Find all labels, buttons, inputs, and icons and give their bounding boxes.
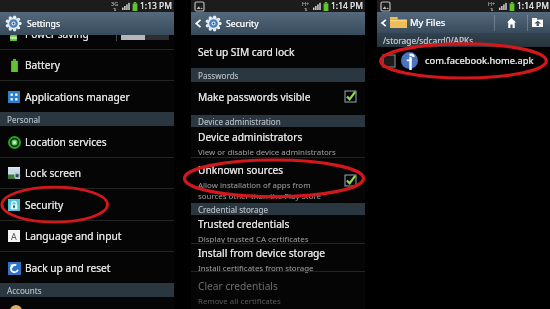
staticText: Battery bbox=[25, 58, 60, 72]
button[interactable]: Back up and reset bbox=[0, 252, 174, 283]
staticText: View or disable device administrators bbox=[198, 147, 336, 158]
staticText: Personal bbox=[7, 114, 41, 125]
staticText: Security bbox=[226, 18, 259, 30]
staticText: Install from device storage bbox=[198, 246, 326, 260]
staticText: Accounts bbox=[7, 285, 42, 296]
button[interactable]: A bbox=[0, 221, 174, 251]
staticText: Settings bbox=[27, 18, 61, 30]
staticText: 1:14 PM bbox=[517, 0, 549, 12]
staticText: Set up SIM card lock bbox=[198, 45, 295, 59]
button[interactable]: Device administrators bbox=[191, 127, 365, 157]
button[interactable]: Make passwords visible bbox=[191, 82, 365, 115]
staticText: Power saving bbox=[25, 27, 89, 41]
staticText: A bbox=[11, 230, 17, 242]
staticText: Credential storage bbox=[198, 204, 269, 215]
staticText: Allow installation of apps from sources … bbox=[198, 180, 321, 202]
staticText: Security bbox=[25, 198, 64, 212]
staticText: ⇅ bbox=[304, 7, 308, 12]
staticText: 1:14 PM bbox=[331, 0, 363, 12]
button[interactable]: Security bbox=[0, 189, 174, 220]
staticText: Passwords bbox=[198, 70, 239, 81]
button[interactable]: Set up SIM card lock bbox=[191, 35, 365, 68]
staticText: Lock screen bbox=[25, 166, 82, 180]
staticText: Display trusted CA certificates bbox=[198, 234, 309, 245]
staticText: H+ bbox=[488, 0, 496, 7]
button[interactable]: Settings bbox=[6, 12, 174, 35]
staticText: /storage/sdcard0/APKs bbox=[383, 35, 474, 46]
staticText: Device administrators bbox=[198, 130, 303, 144]
staticText: Unknown sources bbox=[198, 163, 284, 177]
button[interactable]: Power saving bbox=[0, 19, 174, 49]
staticText: com.facebook.home.apk bbox=[425, 54, 534, 67]
staticText: H+ bbox=[302, 0, 310, 7]
staticText: Location services bbox=[25, 135, 107, 149]
button[interactable]: Trusted credentials bbox=[191, 215, 365, 243]
button[interactable] bbox=[0, 297, 174, 309]
staticText: Install certificates from storage bbox=[198, 263, 314, 273]
button[interactable]: Lock screen bbox=[0, 158, 174, 188]
staticText: Device administration bbox=[198, 116, 281, 127]
button[interactable]: Clear credentials bbox=[191, 272, 365, 309]
staticText: Remove all certificates bbox=[198, 296, 281, 307]
button[interactable]: com.facebook.home.apk bbox=[377, 47, 550, 74]
staticText: ⇅ bbox=[490, 7, 494, 12]
staticText: Trusted credentials bbox=[198, 217, 290, 231]
button[interactable]: Install from device storage bbox=[191, 244, 365, 271]
staticText: Language and input bbox=[25, 229, 122, 243]
staticText: 1:13 PM bbox=[140, 0, 172, 12]
button[interactable]: Back bbox=[378, 17, 389, 28]
staticText: Back up and reset bbox=[25, 261, 111, 275]
button[interactable]: Up one level bbox=[528, 12, 546, 33]
staticText: My Files bbox=[410, 16, 446, 29]
staticText: 3G bbox=[111, 0, 119, 7]
button[interactable]: Unknown sources bbox=[191, 158, 365, 203]
button[interactable]: Location services bbox=[0, 126, 174, 157]
button[interactable]: Home bbox=[495, 12, 527, 33]
staticText: Clear credentials bbox=[198, 279, 278, 293]
button[interactable]: Back bbox=[193, 18, 204, 29]
staticText: Applications manager bbox=[25, 90, 130, 104]
staticText: Make passwords visible bbox=[198, 90, 345, 104]
button[interactable]: Applications manager bbox=[0, 81, 174, 112]
staticText: ⇅ bbox=[113, 7, 117, 12]
button[interactable]: Battery bbox=[0, 50, 174, 80]
